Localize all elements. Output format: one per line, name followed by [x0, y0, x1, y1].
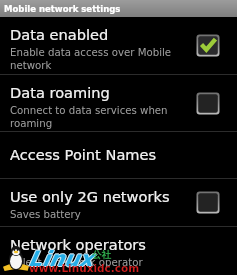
- staticText: Network operators: [10, 236, 146, 253]
- staticText: Saves battery: [10, 209, 81, 221]
- staticText: Linux: [29, 247, 94, 271]
- staticText: Use only 2G networks: [10, 188, 170, 205]
- button[interactable]: Data roaming: [0, 75, 237, 131]
- staticText: Linux: [28, 247, 93, 271]
- button[interactable]: Use only 2G networks: [0, 179, 237, 226]
- button[interactable]: Access Point Names: [0, 132, 237, 178]
- button[interactable]: Data enabled: [0, 17, 237, 74]
- staticText: Linux: [30, 247, 95, 271]
- staticText: Linux: [29, 248, 94, 272]
- staticText: Select a network operator: [10, 257, 143, 269]
- staticText: Connect to data services when roaming: [10, 105, 193, 129]
- staticText: Data roaming: [10, 84, 110, 101]
- staticText: 公社: [92, 249, 111, 261]
- staticText: Data enabled: [10, 26, 109, 43]
- button[interactable]: Network operators: [0, 227, 237, 275]
- staticText: Mobile network settings: [4, 4, 121, 14]
- staticText: Access Point Names: [10, 146, 157, 163]
- staticText: Linux: [29, 246, 94, 270]
- staticText: Enable data access over Mobile network: [10, 47, 193, 71]
- staticText: www.Linuxidc.com: [29, 262, 140, 274]
